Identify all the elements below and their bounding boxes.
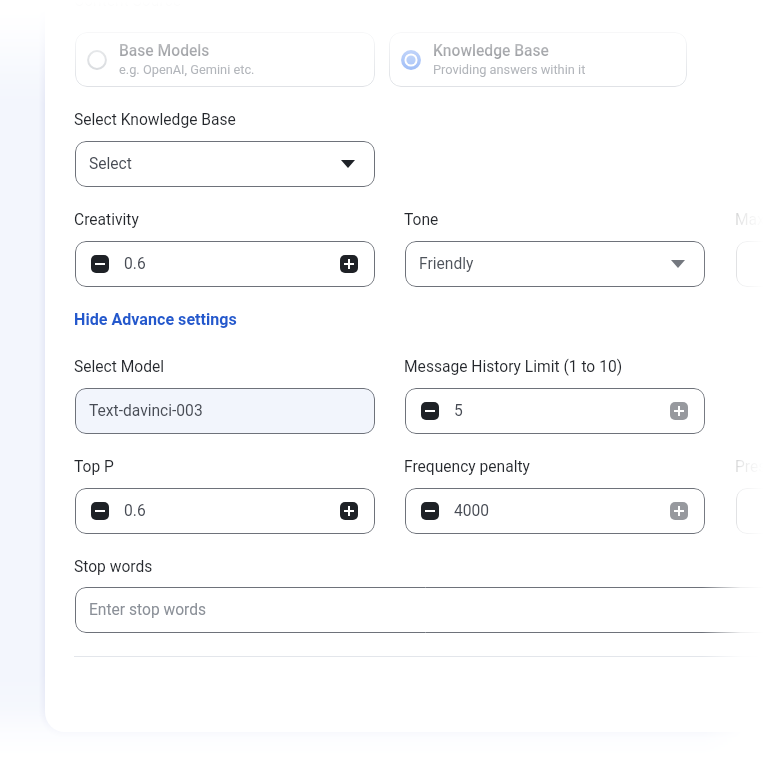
staticText: 0.6 [124,502,146,520]
staticText: Tone [404,211,439,229]
staticText: Select Model [74,358,165,376]
button[interactable]: Knowledge Base [389,32,687,87]
staticText: Presence penalty [735,458,764,476]
button[interactable]: Increase [340,255,358,273]
staticText: Select [89,155,132,173]
staticText: Friendly [419,255,474,273]
button[interactable]: Increase [670,502,688,520]
button[interactable]: Base Models [75,32,375,87]
button[interactable]: Enter stop words [75,587,764,633]
staticText: Top P [74,458,114,476]
button[interactable] [736,488,764,534]
staticText: Stop words [74,558,153,576]
staticText: Select Knowledge Base [74,111,236,129]
staticText: e.g. OpenAI, Gemini etc. [119,62,255,77]
staticText: Base Models [119,42,210,60]
button[interactable]: Hide Advance settings [74,310,237,329]
staticText: Text-davinci-003 [89,402,203,420]
button[interactable]: Friendly [405,241,705,287]
staticText: Max tokens [735,211,764,229]
button[interactable] [736,241,764,287]
staticText: Knowledge Base [433,42,549,60]
staticText: Hide Advance settings [74,310,237,329]
button[interactable]: Decrease [91,502,109,520]
staticText: Creativity [74,211,139,229]
staticText: Frequency penalty [404,458,530,476]
button[interactable]: Decrease [421,402,439,420]
button[interactable]: Decrease [91,255,109,273]
staticText: 5 [454,402,463,420]
staticText: 0.6 [124,255,146,273]
button[interactable]: Increase [670,402,688,420]
staticText: Enter stop words [89,601,207,619]
button[interactable]: Decrease [421,502,439,520]
button[interactable]: Text-davinci-003 [75,388,375,434]
staticText: 4000 [454,502,490,520]
button[interactable]: Select [75,141,375,187]
staticText: Providing answers within it [433,62,586,77]
button[interactable]: Increase [340,502,358,520]
staticText: Message History Limit (1 to 10) [404,358,623,376]
